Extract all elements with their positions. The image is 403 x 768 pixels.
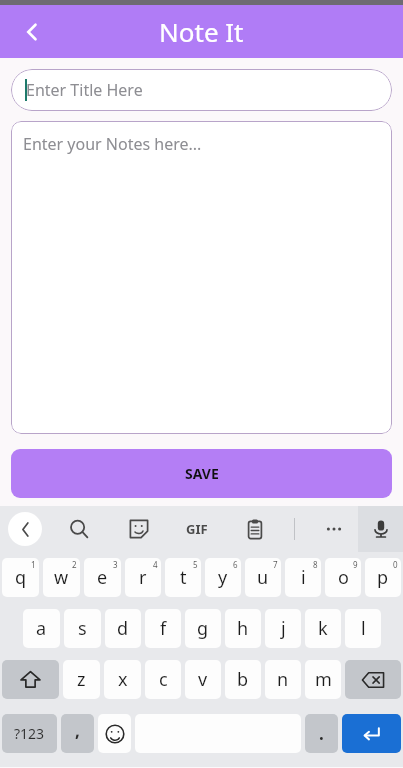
staticText: t [180, 565, 187, 590]
button[interactable]: z [63, 660, 100, 699]
staticText: s [78, 616, 87, 641]
staticText: a [36, 616, 47, 641]
button[interactable]: o [325, 558, 361, 597]
button[interactable]: j [265, 609, 301, 648]
staticText: o [338, 565, 349, 590]
button[interactable]: Emoji [98, 714, 131, 753]
button[interactable]: f [145, 609, 181, 648]
button[interactable]: v [185, 660, 221, 699]
button[interactable]: m [305, 660, 341, 699]
staticText: r [139, 565, 147, 590]
staticText: b [237, 667, 249, 692]
button[interactable]: Backspace [345, 660, 401, 699]
staticText: y [218, 565, 228, 590]
button[interactable]: d [105, 609, 141, 648]
staticText: GIF [186, 520, 208, 538]
staticText: u [257, 565, 269, 590]
staticText: SAVE [185, 464, 219, 483]
staticText: Enter Title Here [26, 79, 143, 101]
button[interactable]: r [125, 558, 161, 597]
button[interactable]: w [43, 558, 80, 597]
button[interactable]: b [225, 660, 261, 699]
button[interactable]: Stickers [122, 512, 156, 546]
staticText: 0 [393, 559, 398, 570]
staticText: d [117, 616, 129, 641]
button[interactable]: GIF [180, 512, 214, 546]
staticText: p [377, 565, 389, 590]
button[interactable]: . [305, 714, 338, 753]
staticText: l [361, 616, 366, 641]
button[interactable]: i [285, 558, 321, 597]
button[interactable]: Enter your Notes here... [11, 121, 392, 434]
button[interactable]: t [165, 558, 201, 597]
staticText: 6 [233, 559, 238, 570]
staticText: 3 [113, 559, 118, 570]
staticText: 8 [313, 559, 318, 570]
button[interactable]: Search [62, 512, 96, 546]
button[interactable]: l [345, 609, 381, 648]
button[interactable]: ?123 [2, 714, 57, 753]
staticText: n [277, 667, 289, 692]
staticText: , [75, 719, 80, 742]
button[interactable]: q [2, 558, 39, 597]
button[interactable]: More options [317, 512, 351, 546]
staticText: m [315, 667, 332, 692]
button[interactable]: Enter Title Here [11, 69, 392, 111]
button[interactable]: g [185, 609, 221, 648]
staticText: Enter your Notes here... [23, 133, 202, 155]
staticText: g [197, 616, 209, 641]
button[interactable]: c [145, 660, 181, 699]
staticText: x [118, 667, 128, 692]
staticText: e [97, 565, 108, 590]
button[interactable]: x [104, 660, 141, 699]
button[interactable]: SAVE [11, 449, 392, 498]
button[interactable]: Close toolbar [8, 512, 42, 546]
button[interactable]: k [305, 609, 341, 648]
staticText: c [159, 667, 168, 692]
button[interactable]: Enter [342, 714, 401, 753]
button[interactable]: Clipboard [238, 512, 272, 546]
button[interactable]: u [245, 558, 281, 597]
staticText: 5 [193, 559, 198, 570]
staticText: 4 [153, 559, 158, 570]
staticText: h [237, 616, 249, 641]
button[interactable]: Shift [2, 660, 59, 699]
staticText: q [15, 565, 27, 590]
button[interactable]: , [61, 714, 94, 753]
button[interactable]: Back [12, 12, 52, 52]
staticText: v [198, 667, 208, 692]
button[interactable]: e [84, 558, 121, 597]
staticText: ?123 [14, 724, 45, 743]
button[interactable]: y [205, 558, 241, 597]
button[interactable]: Voice input [358, 506, 403, 552]
staticText: k [318, 616, 328, 641]
button[interactable]: h [225, 609, 261, 648]
staticText: Note It [159, 14, 244, 49]
button[interactable]: s [64, 609, 101, 648]
staticText: . [319, 722, 324, 745]
button[interactable]: a [23, 609, 60, 648]
staticText: 9 [353, 559, 358, 570]
staticText: 2 [72, 559, 77, 570]
staticText: 7 [273, 559, 278, 570]
staticText: i [301, 565, 306, 590]
staticText: f [160, 616, 167, 641]
button[interactable]: p [365, 558, 401, 597]
staticText: j [281, 616, 286, 641]
staticText: z [77, 667, 86, 692]
button[interactable]: n [265, 660, 301, 699]
staticText: w [54, 565, 69, 590]
staticText: 1 [31, 559, 36, 570]
